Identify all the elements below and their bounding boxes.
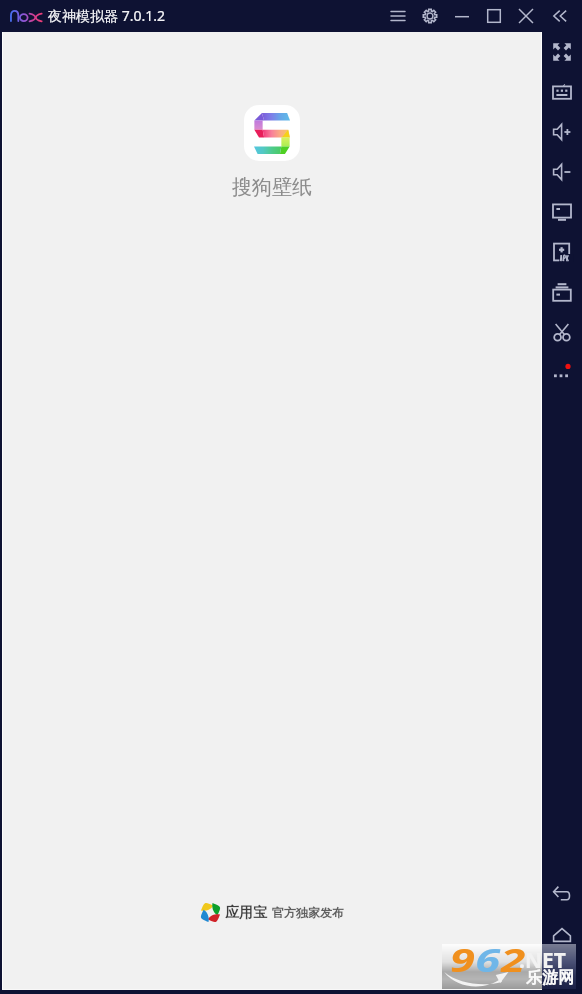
button[interactable]: Back [542,873,582,913]
staticText: 官方独家发布 [272,905,344,920]
button[interactable]: Volume up [542,112,582,152]
button[interactable]: Home [542,915,582,955]
button[interactable]: Display [542,192,582,232]
button[interactable]: Volume down [542,152,582,192]
staticText: 6 [475,937,501,973]
staticText: .NET [519,946,566,975]
button[interactable]: Screenshot [542,312,582,352]
staticText: 夜神模拟器 7.0.1.2 [48,6,165,25]
staticText: 搜狗壁纸 [232,175,312,200]
button[interactable]: Collapse [547,3,573,29]
button[interactable]: Install APK [542,232,582,272]
staticText: 9 [450,937,475,973]
staticText: 2 [501,937,526,973]
button[interactable]: Fullscreen [542,32,582,72]
button[interactable]: Close [513,3,539,29]
staticText: 乐游网 [526,968,574,988]
button[interactable]: Maximize [481,3,507,29]
button[interactable]: Minimize [449,3,475,29]
button[interactable]: Keyboard [542,72,582,112]
button[interactable]: More [542,352,582,392]
button[interactable]: Settings [417,3,443,29]
staticText: 应用宝 [225,904,267,922]
button[interactable]: Menu [385,3,411,29]
button[interactable]: Multi instance [542,272,582,312]
